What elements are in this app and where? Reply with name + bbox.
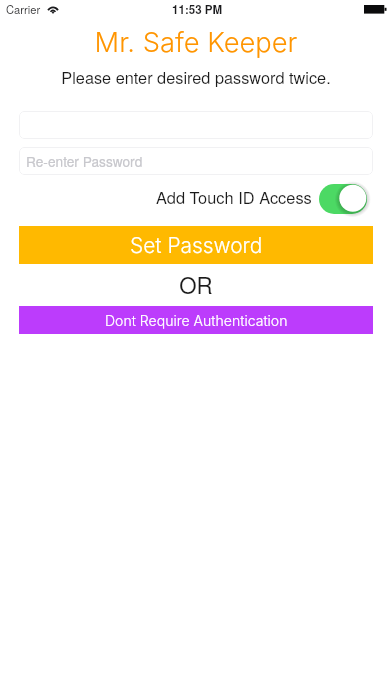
staticText: Set Password — [130, 233, 263, 258]
staticText: OR — [0, 268, 392, 300]
button[interactable]: Dont Require Authentication — [19, 306, 373, 334]
staticText: Carrier — [6, 1, 41, 17]
button[interactable]: Add Touch ID Access toggle — [319, 183, 368, 214]
button[interactable] — [19, 111, 373, 139]
staticText: Re-enter Password — [26, 151, 143, 171]
button[interactable]: Re-enter Password — [19, 147, 373, 175]
button[interactable]: Set Password — [19, 226, 373, 264]
staticText: 11:53 PM — [172, 1, 223, 18]
staticText: Add Touch ID Access — [156, 185, 312, 208]
staticText: Mr. Safe Keeper — [0, 26, 392, 59]
staticText: Please enter desired password twice. — [0, 65, 392, 88]
staticText: Dont Require Authentication — [105, 312, 288, 329]
